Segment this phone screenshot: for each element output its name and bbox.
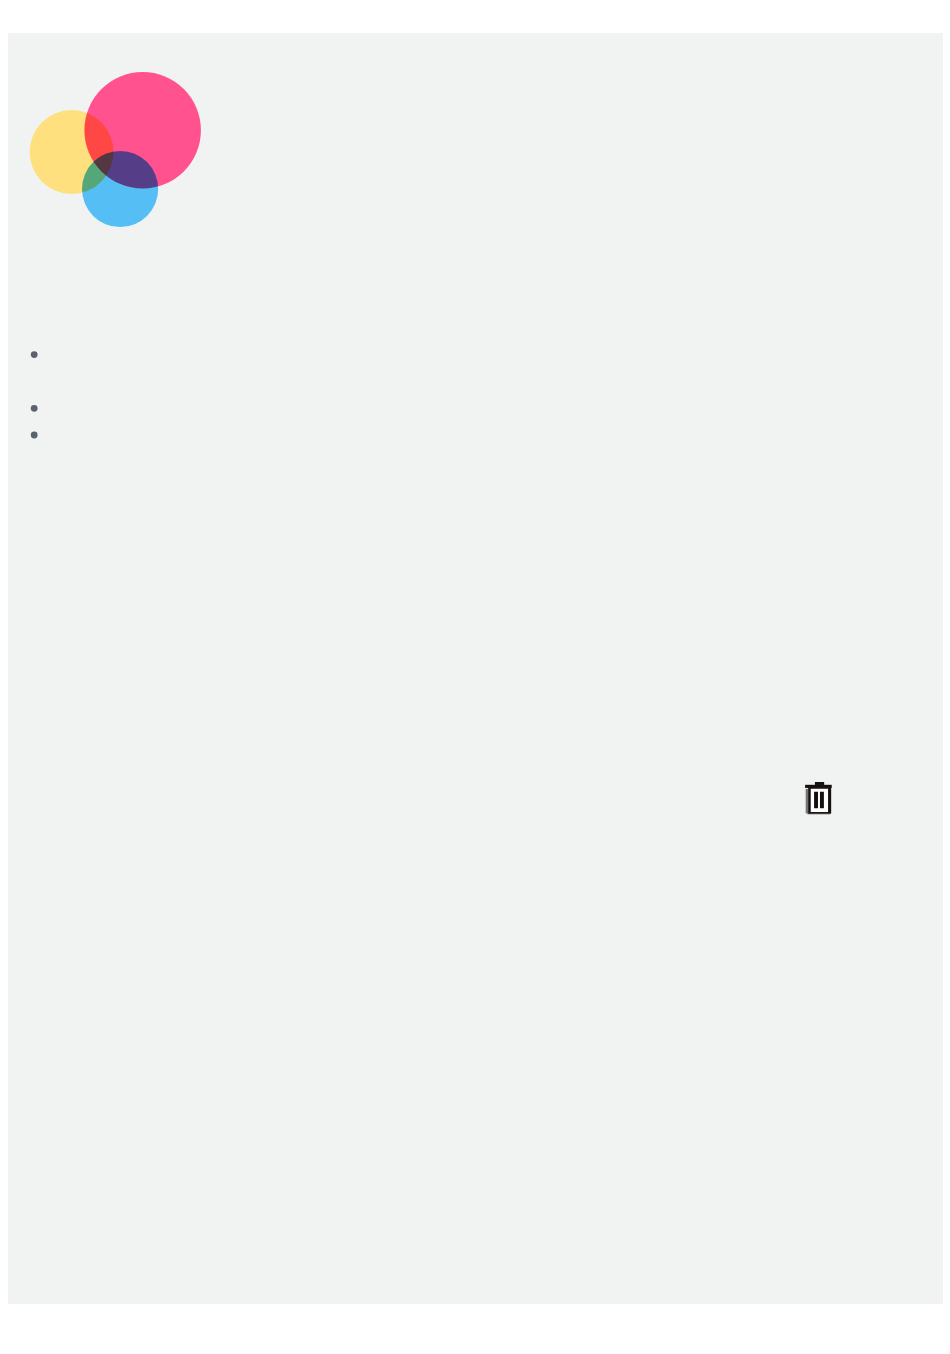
button[interactable]: Colour mixing diagram	[28, 68, 228, 278]
button[interactable]: Delete	[796, 776, 840, 820]
